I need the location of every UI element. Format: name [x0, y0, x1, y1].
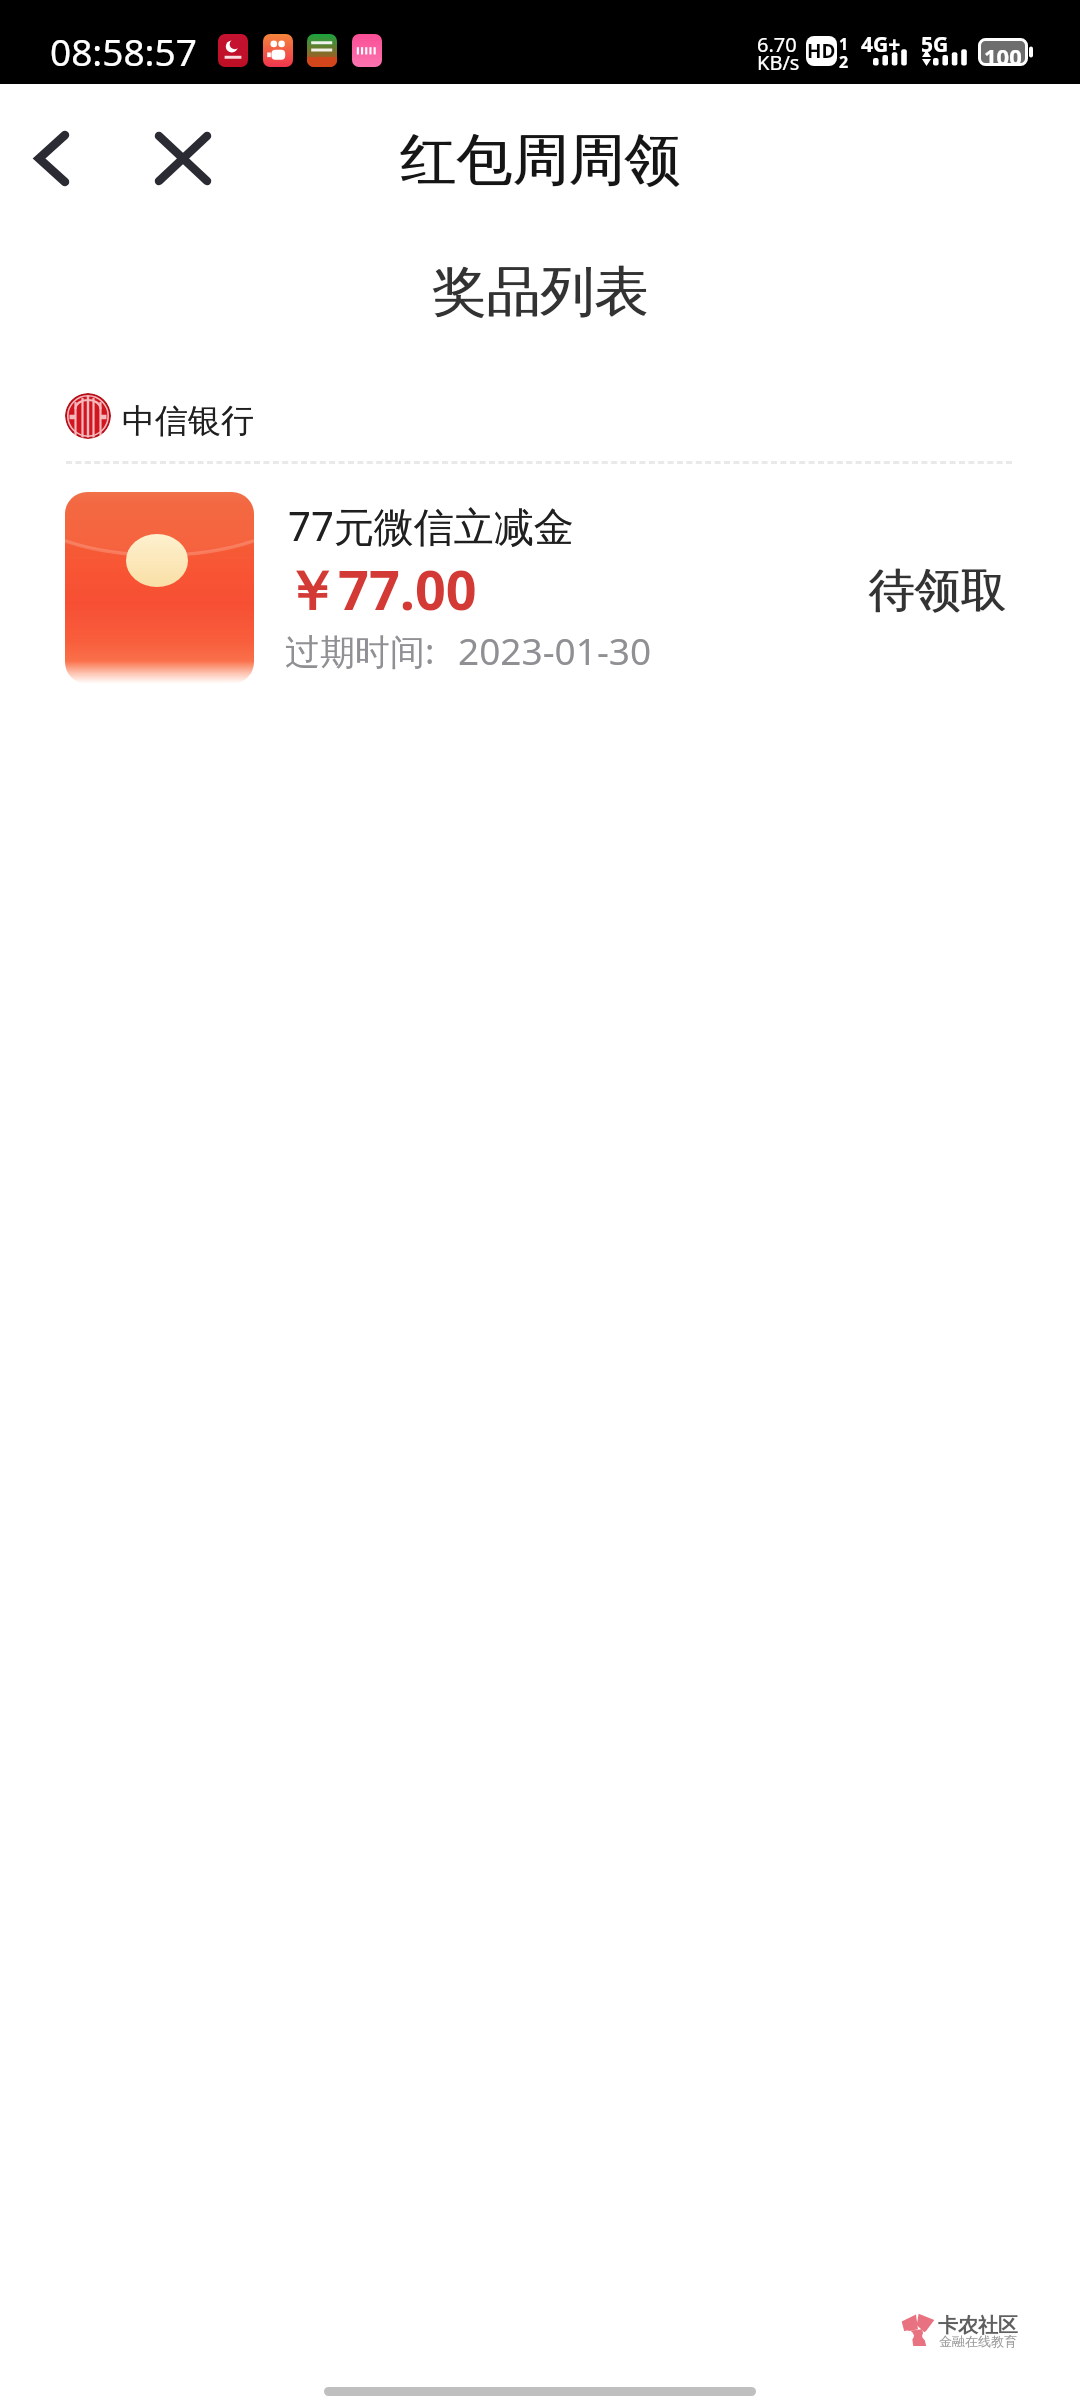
staticText: 奖品列表 [0, 258, 1080, 326]
staticText: 77元微信立减金 [288, 498, 574, 553]
staticText: 1 [839, 33, 849, 55]
staticText: 100 [984, 41, 1022, 69]
staticText: 红包周周领 [0, 125, 1080, 196]
staticText: 2 [839, 51, 849, 73]
staticText: 过期时间: [285, 627, 435, 675]
button[interactable]: Back [10, 110, 94, 206]
staticText: 2023-01-30 [458, 625, 652, 675]
staticText: KB/s [757, 49, 800, 76]
staticText: 红包周周领 [1, 125, 1080, 196]
staticText: 奖品列表 [1, 258, 1080, 326]
button[interactable]: Close [140, 110, 226, 206]
staticText: 77元微信立减金 [288, 498, 574, 553]
staticText: 中信银行 [122, 400, 254, 442]
staticText: 卡农社区 [938, 2313, 1018, 2338]
staticText: 中信银行 [122, 400, 254, 442]
staticText: 待领取 [868, 562, 1006, 620]
staticText: ￥77.00 [284, 552, 477, 626]
staticText: 08:58:57 [50, 26, 197, 76]
button[interactable]: 77元微信立减金 [0, 480, 1080, 696]
staticText: 金融在线教育 [939, 2333, 1017, 2349]
staticText: HD [807, 38, 836, 64]
staticText: 5G [921, 30, 949, 59]
staticText: 4G+ [861, 30, 901, 59]
staticText: 待领取 [869, 562, 1007, 620]
staticText: 6.70 [757, 31, 797, 58]
